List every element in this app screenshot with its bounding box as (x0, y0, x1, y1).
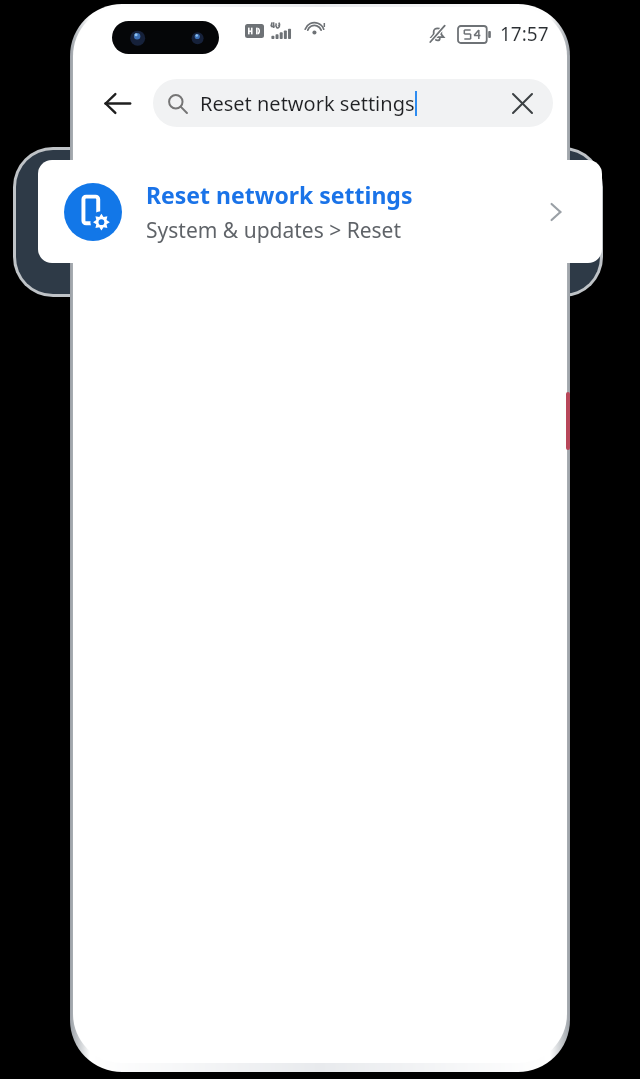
button[interactable]: Back (93, 79, 141, 127)
staticText: 17:57 (500, 21, 549, 47)
button[interactable]: Reset network settings (153, 79, 553, 127)
button[interactable]: Open (536, 192, 576, 232)
staticText: System & updates > Reset (146, 216, 402, 245)
staticText: Reset network settings (200, 90, 415, 117)
staticText: Reset network settings (146, 179, 413, 210)
button[interactable]: Reset network settings (38, 160, 602, 263)
button[interactable]: Clear (505, 86, 539, 120)
